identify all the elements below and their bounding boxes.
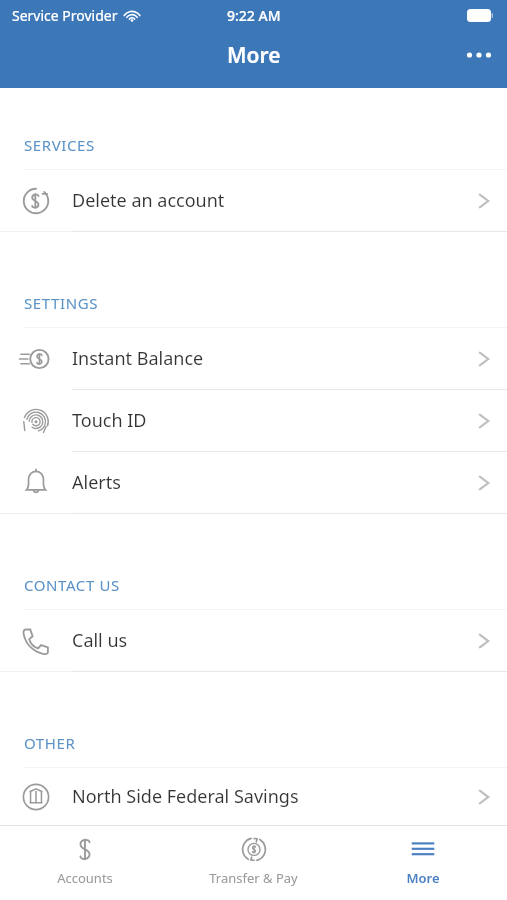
button[interactable]: Accounts bbox=[0, 826, 169, 900]
staticText: More bbox=[406, 869, 440, 887]
staticText: Accounts bbox=[57, 869, 113, 887]
button[interactable]: Touch ID bbox=[0, 390, 507, 451]
staticText: Delete an account bbox=[72, 188, 461, 213]
button[interactable]: North Side Federal Savings bbox=[0, 768, 507, 825]
button[interactable]: Delete an account bbox=[0, 170, 507, 231]
staticText: Alerts bbox=[72, 470, 461, 495]
staticText: CONTACT US bbox=[24, 575, 120, 595]
staticText: Service Provider bbox=[12, 6, 118, 25]
staticText: North Side Federal Savings bbox=[72, 784, 461, 809]
button[interactable]: Alerts bbox=[0, 452, 507, 513]
staticText: Transfer & Pay bbox=[209, 869, 298, 887]
button[interactable]: More options bbox=[451, 31, 507, 79]
staticText: More bbox=[227, 41, 281, 70]
staticText: 9:22 AM bbox=[227, 6, 281, 25]
staticText: Touch ID bbox=[72, 408, 461, 433]
staticText: Instant Balance bbox=[72, 346, 461, 371]
staticText: SERVICES bbox=[24, 135, 95, 155]
staticText: SETTINGS bbox=[24, 293, 98, 313]
button[interactable]: Instant Balance bbox=[0, 328, 507, 389]
button[interactable]: Call us bbox=[0, 610, 507, 671]
button[interactable]: Transfer & Pay bbox=[169, 826, 338, 900]
button[interactable]: More bbox=[338, 826, 507, 900]
staticText: OTHER bbox=[24, 733, 76, 753]
staticText: Call us bbox=[72, 628, 461, 653]
